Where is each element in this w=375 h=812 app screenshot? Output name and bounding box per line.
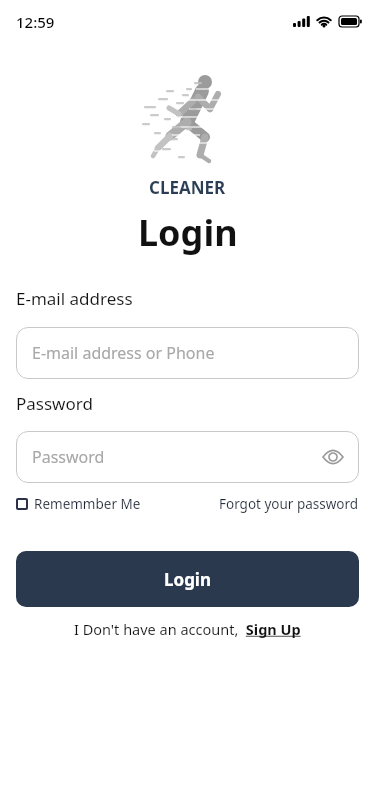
staticText: I Don't have an account, Sign Up <box>74 619 301 639</box>
staticText: CLEANER <box>149 176 226 199</box>
button[interactable]: Rememmber Me <box>16 495 141 513</box>
staticText: Password <box>16 392 93 415</box>
button[interactable]: Forgot your password <box>219 495 359 513</box>
button[interactable]: I Don't have an account, Sign Up <box>16 619 359 639</box>
button[interactable]: E-mail address or Phone <box>16 327 359 379</box>
staticText: E-mail address or Phone <box>32 342 215 364</box>
staticText: 12:59 <box>16 12 55 32</box>
button[interactable]: Password <box>16 431 359 483</box>
staticText: Login <box>138 208 238 257</box>
staticText: E-mail address <box>16 287 133 310</box>
button[interactable]: Login <box>16 551 359 607</box>
staticText: Rememmber Me <box>34 495 141 513</box>
staticText: Password <box>32 446 105 468</box>
staticText: Login <box>164 568 212 591</box>
